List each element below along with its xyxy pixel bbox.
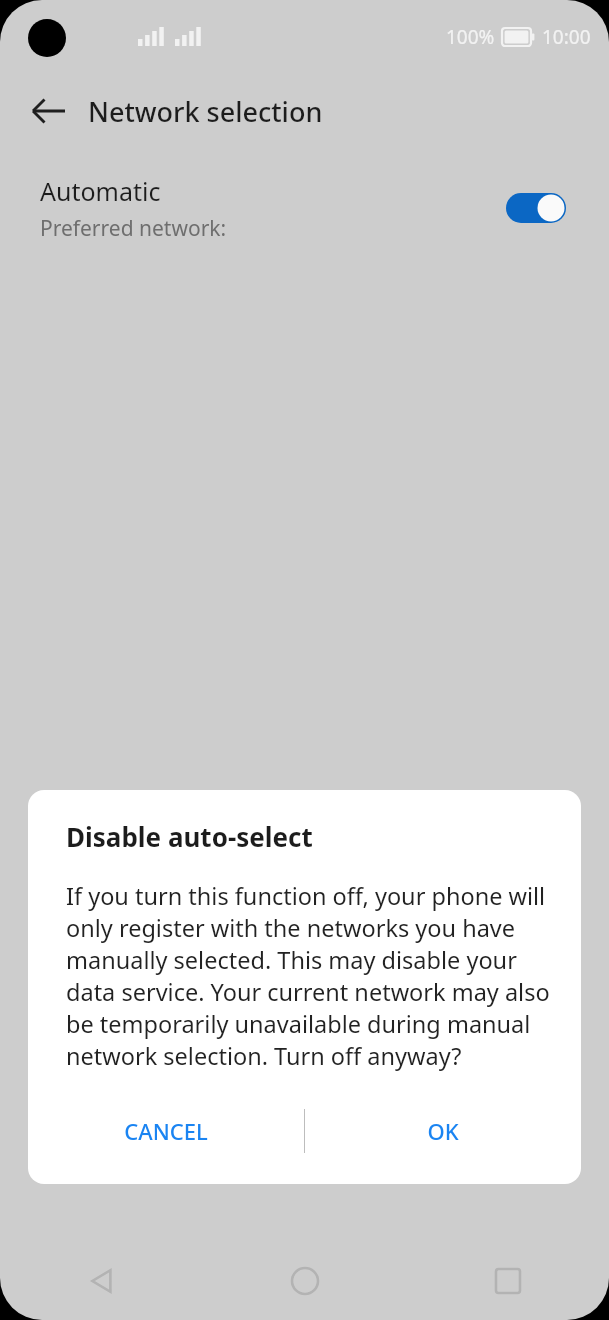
staticText: 100% [446,24,495,50]
button[interactable]: Back [0,1242,203,1320]
button[interactable]: Back [22,84,76,138]
staticText: If you turn this function off, your phon… [66,880,559,1072]
staticText: OK [427,1116,459,1146]
button[interactable]: Automatic network selection toggle [506,193,566,223]
staticText: 10:00 [542,24,591,50]
staticText: Automatic [40,174,161,208]
button[interactable]: CANCEL [28,1098,304,1164]
button[interactable]: Recent apps [406,1242,609,1320]
staticText: Preferred network: [40,214,227,243]
staticText: CANCEL [124,1116,208,1146]
button[interactable]: Automatic [0,160,609,256]
staticText: Disable auto-select [66,819,313,854]
staticText: Network selection [88,93,323,130]
button[interactable]: OK [305,1098,581,1164]
